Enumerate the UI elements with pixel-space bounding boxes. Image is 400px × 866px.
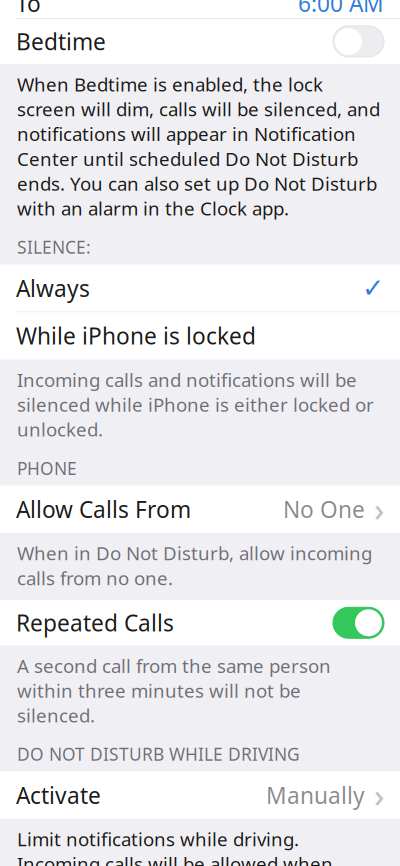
staticText: Manually [266, 780, 365, 810]
staticText: No One [283, 494, 365, 524]
button[interactable]: Bedtime [0, 19, 400, 64]
staticText: 6:00 AM [298, 0, 384, 18]
button[interactable]: Allow Calls From [0, 486, 400, 533]
staticText: › [374, 774, 384, 816]
staticText: Allow Calls From [16, 494, 191, 524]
staticText: Limit notifications while driving. Incom… [17, 827, 383, 866]
staticText: Always [16, 273, 90, 303]
staticText: When in Do Not Disturb, allow incoming c… [17, 541, 372, 590]
staticText: ‹ [12, 0, 24, 4]
staticText: While iPhone is locked [16, 321, 256, 351]
staticText: ✓ [362, 273, 384, 303]
staticText: To [16, 0, 41, 18]
button[interactable]: Always [0, 265, 400, 312]
staticText: Repeated Calls [16, 608, 174, 638]
staticText: When Bedtime is enabled, the lock screen… [17, 72, 380, 221]
staticText: Incoming calls and notifications will be… [17, 367, 374, 442]
staticText: A second call from the same person withi… [17, 653, 331, 728]
button[interactable]: Repeated Calls [0, 600, 400, 645]
staticText: Activate [16, 780, 101, 810]
staticText: Bedtime [16, 26, 106, 56]
button[interactable]: Activate [0, 772, 400, 819]
staticText: › [374, 488, 384, 530]
staticText: SILENCE: [17, 236, 91, 259]
staticText: DO NOT DISTURB WHILE DRIVING [17, 743, 300, 766]
staticText: PHONE [17, 457, 77, 480]
button[interactable]: While iPhone is locked [0, 312, 400, 359]
